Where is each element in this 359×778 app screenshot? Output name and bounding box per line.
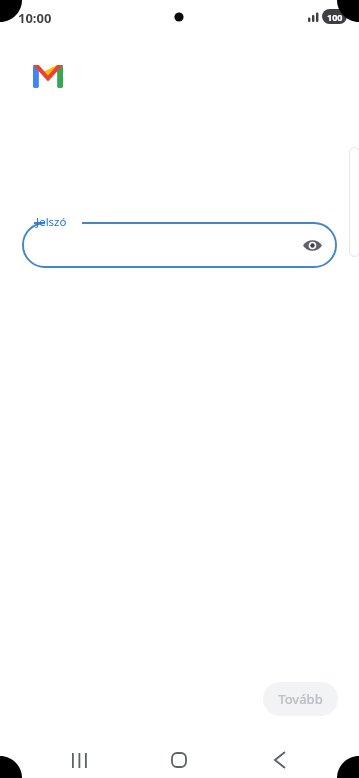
button[interactable]: Tovább: [263, 682, 338, 716]
button[interactable]: Kezdőképernyő: [155, 738, 203, 778]
button[interactable]: Jelszó megjelenítése: [22, 222, 337, 268]
button[interactable]: Vissza: [256, 738, 304, 778]
staticText: Jelszó: [36, 214, 67, 230]
staticText: Tovább: [278, 690, 323, 708]
button[interactable]: Jelszó megjelenítése: [296, 229, 328, 261]
staticText: 100: [327, 11, 343, 23]
button[interactable]: Legutóbbiak: [55, 738, 103, 778]
staticText: 10:00: [18, 9, 52, 27]
